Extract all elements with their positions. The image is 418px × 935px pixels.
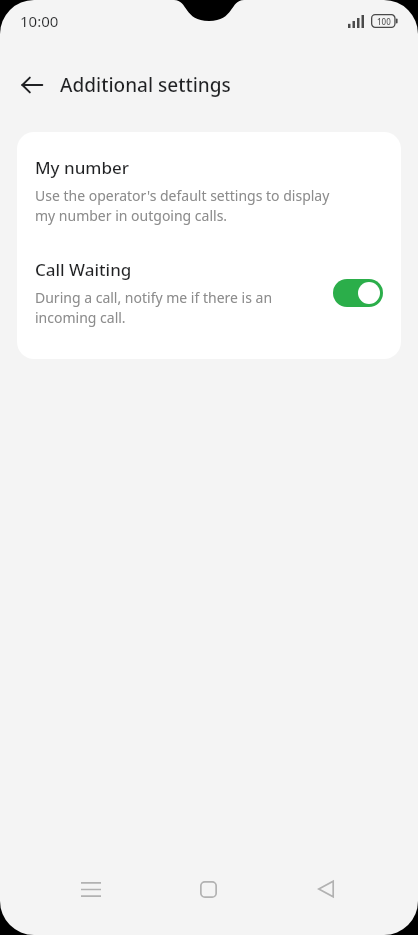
- button[interactable]: Call Waiting toggle, on: [333, 279, 383, 307]
- button[interactable]: Call Waiting: [17, 253, 401, 333]
- staticText: Use the operator's default settings to d…: [35, 186, 343, 226]
- staticText: During a call, notify me if there is an …: [35, 288, 317, 328]
- button[interactable]: Recent apps: [65, 865, 117, 913]
- staticText: 100: [377, 16, 391, 27]
- staticText: Call Waiting: [35, 258, 132, 281]
- staticText: 10:00: [20, 11, 59, 31]
- button[interactable]: Back: [300, 865, 352, 913]
- staticText: Additional settings: [60, 72, 231, 98]
- button[interactable]: My number: [17, 151, 401, 231]
- staticText: My number: [35, 156, 129, 179]
- button[interactable]: Back: [10, 64, 54, 106]
- button[interactable]: Home: [182, 865, 234, 913]
